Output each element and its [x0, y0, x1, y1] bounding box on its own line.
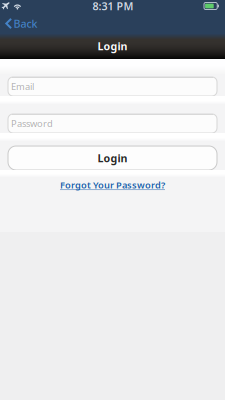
button[interactable]: Forgot Your Password?: [0, 179, 225, 191]
staticText: Password: [11, 117, 53, 130]
staticText: Login: [97, 151, 127, 165]
staticText: Back: [13, 16, 37, 31]
staticText: Forgot Your Password?: [60, 179, 165, 191]
staticText: Email: [11, 80, 34, 93]
button[interactable]: Back: [0, 10, 44, 35]
staticText: 8:31 PM: [92, 0, 133, 13]
button[interactable]: Login: [8, 146, 217, 170]
staticText: Login: [97, 39, 127, 53]
